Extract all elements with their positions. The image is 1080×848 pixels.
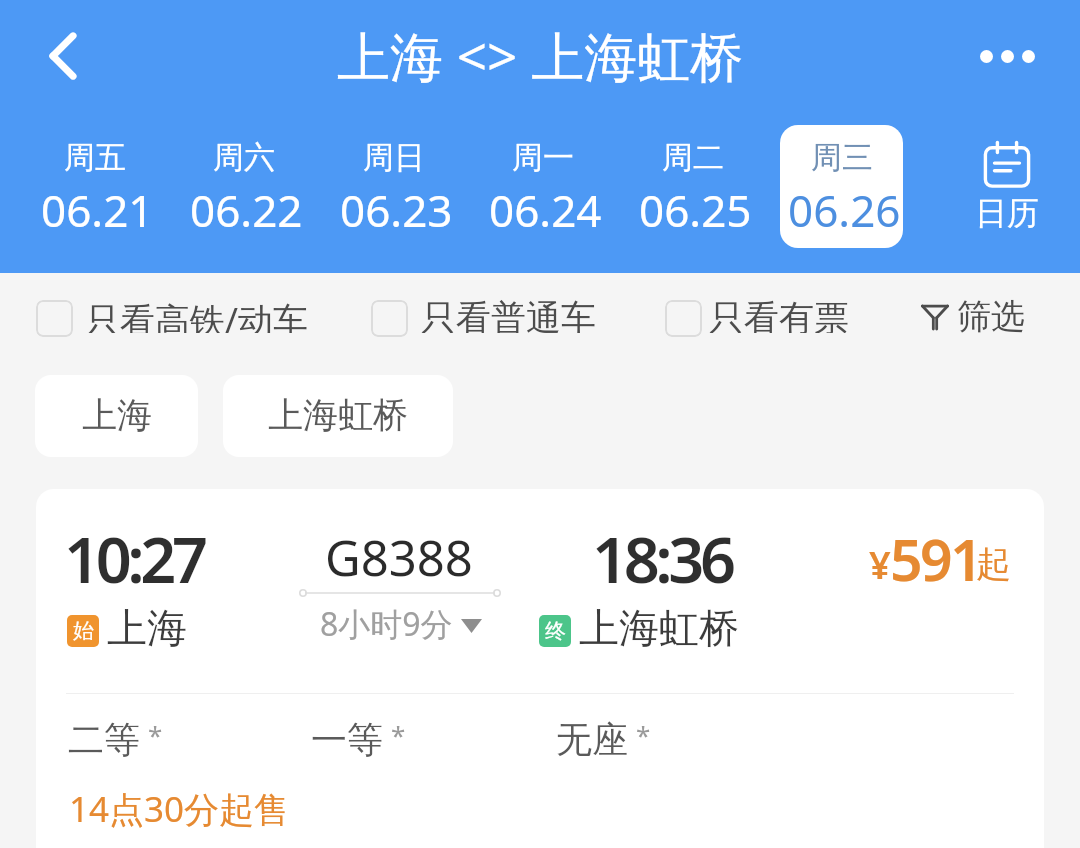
staticText: * bbox=[391, 717, 406, 752]
staticText: 上海虹桥 bbox=[268, 393, 408, 437]
staticText: 上海 bbox=[107, 603, 187, 653]
button[interactable]: 只看有票 bbox=[665, 300, 849, 337]
staticText: 06.25 bbox=[639, 180, 752, 240]
staticText: 591 bbox=[890, 520, 981, 598]
staticText: 筛选 bbox=[957, 295, 1025, 338]
button[interactable]: 上海虹桥 bbox=[223, 375, 453, 457]
button[interactable]: 周六 bbox=[171, 112, 321, 273]
button[interactable]: 周五 bbox=[22, 112, 172, 273]
staticText: 06.23 bbox=[340, 180, 453, 240]
staticText: ¥ bbox=[869, 538, 891, 590]
button[interactable]: 一等 bbox=[311, 717, 406, 762]
staticText: 日历 bbox=[975, 193, 1039, 233]
staticText: 起 bbox=[976, 542, 1011, 586]
staticText: 06.21 bbox=[41, 180, 154, 240]
staticText: G8388 bbox=[325, 524, 473, 591]
staticText: 上海 bbox=[82, 393, 152, 437]
staticText: 周一 bbox=[512, 138, 574, 177]
button[interactable]: 周一 bbox=[470, 112, 620, 273]
staticText: 周日 bbox=[363, 138, 425, 177]
button[interactable]: 只看高铁/动车 bbox=[36, 300, 309, 337]
staticText: 只看普通车 bbox=[421, 296, 596, 333]
button[interactable]: Show stops bbox=[461, 619, 482, 633]
button[interactable]: More options bbox=[965, 14, 1049, 98]
staticText: 06.22 bbox=[190, 180, 303, 240]
staticText: 14点30分起售 bbox=[69, 785, 290, 833]
button[interactable]: 二等 bbox=[68, 717, 163, 762]
staticText: 10:27 bbox=[64, 516, 204, 602]
button[interactable]: Back bbox=[24, 17, 102, 95]
button[interactable]: 只看普通车 bbox=[371, 300, 596, 337]
staticText: 周六 bbox=[213, 138, 275, 177]
staticText: 周三 bbox=[811, 138, 873, 177]
button[interactable]: 筛选 bbox=[919, 300, 1026, 343]
staticText: 周五 bbox=[64, 138, 126, 177]
staticText: 06.26 bbox=[788, 180, 901, 240]
staticText: 二等 bbox=[68, 717, 140, 762]
staticText: 只看高铁/动车 bbox=[85, 296, 309, 333]
button[interactable]: 无座 bbox=[556, 717, 651, 762]
button[interactable]: 周日 bbox=[321, 112, 471, 273]
button[interactable]: 周三 bbox=[769, 112, 919, 273]
staticText: * bbox=[148, 717, 163, 752]
staticText: 只看有票 bbox=[709, 296, 849, 333]
staticText: 周二 bbox=[662, 138, 724, 177]
button[interactable]: Calendar bbox=[927, 112, 1080, 273]
staticText: * bbox=[636, 717, 651, 752]
staticText: 终 bbox=[545, 618, 566, 644]
staticText: 18:36 bbox=[592, 516, 732, 602]
staticText: 06.24 bbox=[489, 180, 602, 240]
staticText: 上海虹桥 bbox=[579, 603, 739, 653]
staticText: 始 bbox=[73, 618, 94, 644]
staticText: 8小时9分 bbox=[320, 602, 453, 646]
staticText: 一等 bbox=[311, 717, 383, 762]
button[interactable]: 10:27 bbox=[36, 489, 1044, 848]
button[interactable]: 上海 bbox=[35, 375, 198, 457]
staticText: 无座 bbox=[556, 717, 628, 762]
staticText: 上海 <> 上海虹桥 bbox=[337, 19, 744, 91]
button[interactable]: 周二 bbox=[620, 112, 770, 273]
